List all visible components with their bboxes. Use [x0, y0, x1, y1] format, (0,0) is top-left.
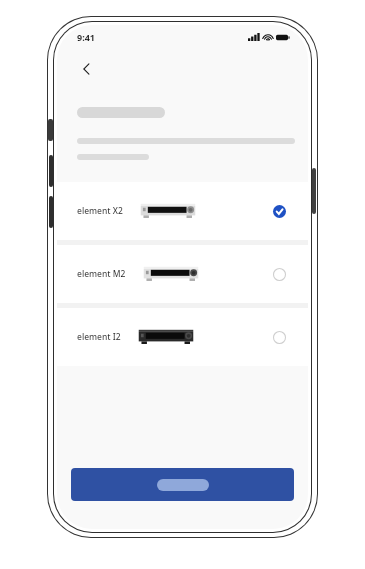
staticText: 9:41	[77, 31, 95, 43]
staticText: element M2	[77, 268, 126, 280]
button[interactable]	[71, 468, 294, 501]
button[interactable]: element X2	[57, 182, 308, 240]
staticText: element X2	[77, 205, 123, 217]
button[interactable]: Select	[268, 326, 290, 348]
button[interactable]: Back	[69, 51, 105, 87]
staticText: element I2	[77, 331, 121, 343]
button[interactable]: Selected	[268, 200, 290, 222]
button[interactable]: element M2	[57, 245, 308, 303]
button[interactable]: Select	[268, 263, 290, 285]
button[interactable]: element I2	[57, 308, 308, 366]
